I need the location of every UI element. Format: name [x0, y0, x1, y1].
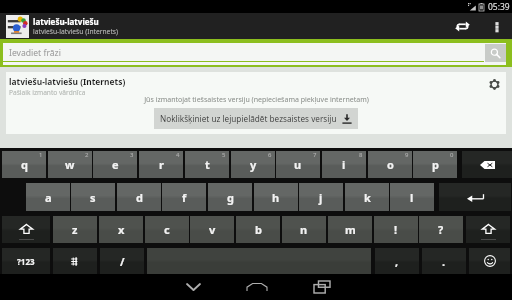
- staticText: x: [118, 222, 125, 237]
- staticText: w: [65, 157, 75, 172]
- button[interactable]: .: [422, 248, 466, 274]
- staticText: 6: [268, 151, 272, 159]
- button[interactable]: c: [145, 216, 189, 243]
- button[interactable]: /: [100, 248, 144, 274]
- staticText: d: [136, 190, 143, 205]
- staticText: l: [410, 190, 414, 205]
- staticText: a: [45, 190, 52, 205]
- staticText: ?123: [17, 256, 35, 267]
- button[interactable]: Change language: [53, 248, 97, 274]
- button[interactable]: i: [322, 151, 366, 178]
- button[interactable]: h: [254, 183, 298, 211]
- staticText: 5: [222, 151, 226, 159]
- staticText: 7: [313, 151, 317, 159]
- staticText: u: [294, 157, 302, 172]
- button[interactable]: x: [99, 216, 143, 243]
- button[interactable]: !: [374, 216, 418, 243]
- staticText: g: [227, 190, 234, 205]
- button[interactable]: l: [390, 183, 434, 211]
- staticText: f: [182, 190, 187, 205]
- button[interactable]: More options: [486, 13, 508, 39]
- button[interactable]: b: [236, 216, 280, 243]
- button[interactable]: Shift: [466, 216, 510, 243]
- staticText: 05:39: [488, 1, 510, 13]
- staticText: 4: [176, 151, 180, 159]
- button[interactable]: Settings: [483, 73, 505, 95]
- staticText: n: [300, 222, 308, 237]
- staticText: ,: [395, 254, 399, 269]
- button[interactable]: Shift: [2, 216, 50, 243]
- button[interactable]: Emoji: [469, 248, 510, 274]
- staticText: e: [112, 157, 119, 172]
- staticText: t: [205, 157, 210, 172]
- button[interactable]: Home: [237, 274, 277, 300]
- button[interactable]: v: [190, 216, 234, 243]
- button[interactable]: latviešu-latviešu (Internets): [6, 72, 506, 134]
- staticText: Jūs izmantojat tiešsaistes versiju (nepi…: [144, 95, 369, 105]
- button[interactable]: o: [368, 151, 412, 178]
- button[interactable]: ,: [375, 248, 419, 274]
- staticText: 3: [130, 151, 134, 159]
- button[interactable]: ?123: [2, 248, 50, 274]
- staticText: 9: [405, 151, 409, 159]
- button[interactable]: [3, 43, 484, 64]
- button[interactable]: y: [231, 151, 275, 178]
- button[interactable]: r: [139, 151, 183, 178]
- staticText: 1: [39, 151, 43, 159]
- staticText: h: [272, 190, 280, 205]
- button[interactable]: Recent apps: [302, 274, 342, 300]
- staticText: 8: [359, 151, 363, 159]
- button[interactable]: m: [328, 216, 372, 243]
- button[interactable]: z: [53, 216, 97, 243]
- button[interactable]: Swap languages: [448, 13, 476, 39]
- staticText: /: [120, 254, 125, 269]
- button[interactable]: t: [185, 151, 229, 178]
- button[interactable]: Search: [485, 44, 506, 62]
- staticText: latviešu-latviešu: [33, 16, 99, 27]
- staticText: y: [250, 157, 257, 172]
- staticText: q: [21, 157, 28, 172]
- staticText: b: [255, 222, 262, 237]
- button[interactable]: k: [345, 183, 389, 211]
- staticText: .: [442, 254, 446, 269]
- button[interactable]: latviešu-latviešu: [6, 13, 119, 39]
- staticText: 0: [450, 151, 454, 159]
- staticText: Noklikšķiniet uz lejupielādēt bezsaistes…: [160, 113, 337, 124]
- button[interactable]: u: [276, 151, 320, 178]
- button[interactable]: f: [162, 183, 206, 211]
- staticText: latviešu-latviešu (Internets): [33, 27, 119, 36]
- button[interactable]: e: [93, 151, 137, 178]
- staticText: k: [364, 190, 371, 205]
- button[interactable]: Backspace: [462, 151, 512, 178]
- button[interactable]: Noklikšķiniet uz lejupielādēt bezsaistes…: [154, 108, 358, 129]
- staticText: latviešu-latviešu (Internets): [9, 76, 126, 87]
- button[interactable]: ?: [419, 216, 463, 243]
- button[interactable]: j: [299, 183, 343, 211]
- staticText: 2: [85, 151, 89, 159]
- staticText: j: [319, 190, 323, 205]
- staticText: !: [394, 222, 398, 237]
- staticText: o: [387, 157, 394, 172]
- button[interactable]: w: [48, 151, 92, 178]
- staticText: s: [90, 190, 96, 205]
- staticText: Pašlaik izmanto vārdnīca: [9, 88, 86, 97]
- button[interactable]: q: [2, 151, 46, 178]
- button[interactable]: Hide keyboard: [173, 274, 213, 300]
- staticText: z: [72, 222, 78, 237]
- staticText: c: [164, 222, 170, 237]
- staticText: Ievadiet frāzi: [9, 47, 61, 59]
- staticText: m: [345, 222, 356, 237]
- button[interactable]: p: [413, 151, 457, 178]
- button[interactable]: g: [208, 183, 252, 211]
- staticText: p: [432, 157, 439, 172]
- button[interactable]: Enter: [439, 183, 511, 211]
- button[interactable]: s: [71, 183, 115, 211]
- staticText: i: [342, 157, 346, 172]
- staticText: ?: [438, 222, 444, 237]
- button[interactable]: a: [26, 183, 70, 211]
- button[interactable]: n: [282, 216, 326, 243]
- staticText: v: [209, 222, 216, 237]
- button[interactable]: d: [117, 183, 161, 211]
- staticText: r: [159, 157, 164, 172]
